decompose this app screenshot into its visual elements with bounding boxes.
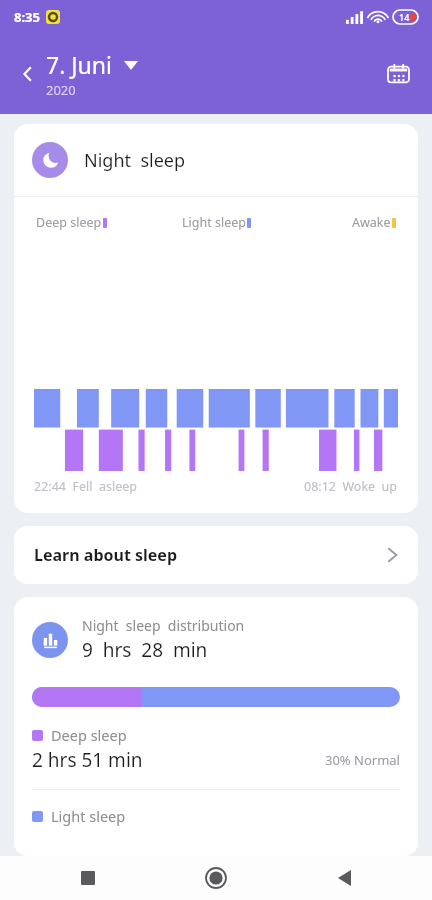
- staticText: Awake: [352, 214, 391, 231]
- staticText: 2020: [46, 81, 76, 99]
- button[interactable]: Deep sleep: [36, 214, 156, 231]
- button[interactable]: Night sleep: [14, 124, 418, 196]
- staticText: 30% Normal: [325, 751, 400, 769]
- button[interactable]: Home: [194, 856, 238, 900]
- staticText: 9 hrs 28 min: [82, 637, 208, 663]
- staticText: 22:44 Fell asleep: [34, 478, 137, 495]
- staticText: Deep sleep: [51, 725, 127, 745]
- staticText: 14: [399, 11, 410, 23]
- staticText: Light sleep: [51, 806, 126, 826]
- button[interactable]: Back: [322, 856, 366, 900]
- staticText: Deep sleep: [36, 214, 102, 231]
- staticText: 2 hrs 51 min: [32, 747, 143, 773]
- staticText: Learn about sleep: [34, 544, 178, 566]
- button[interactable]: Previous day: [10, 56, 46, 92]
- button[interactable]: Recent apps: [66, 856, 110, 900]
- button[interactable]: Awake: [276, 214, 396, 231]
- staticText: 7. Juni: [46, 49, 112, 80]
- button[interactable]: Calendar: [376, 52, 420, 96]
- button[interactable]: Night sleep distribution: [14, 597, 418, 663]
- button[interactable]: Learn about sleep: [14, 526, 418, 584]
- staticText: 8:35: [14, 8, 40, 26]
- button[interactable]: Light sleep: [156, 214, 276, 231]
- staticText: Night sleep: [84, 148, 186, 173]
- button[interactable]: Choose date: [121, 55, 141, 75]
- staticText: 08:12 Woke up: [304, 478, 398, 495]
- staticText: Night sleep distribution: [82, 616, 245, 635]
- staticText: Light sleep: [182, 214, 246, 231]
